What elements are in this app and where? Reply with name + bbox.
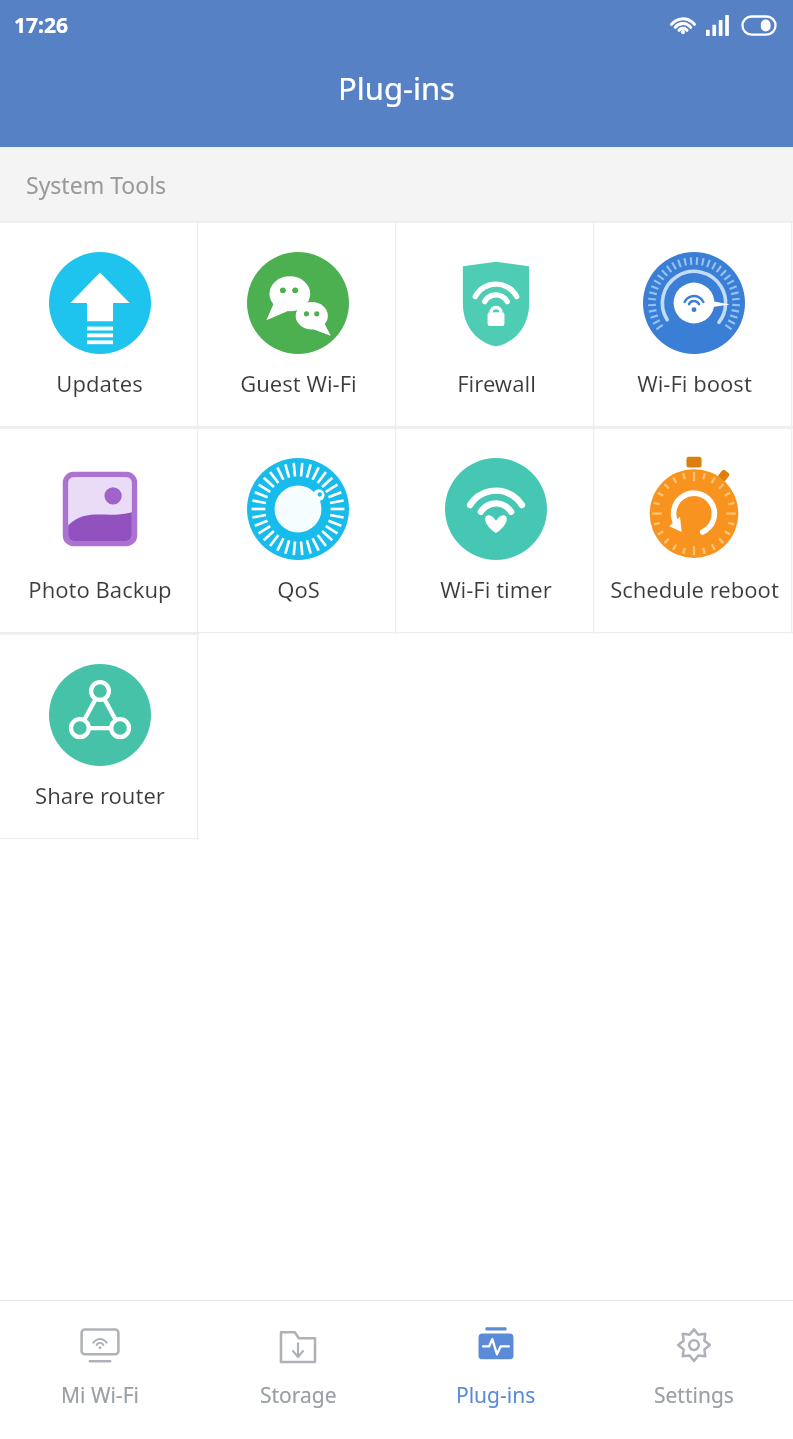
other: Mi Wi-Fi [77,1323,123,1369]
staticText: Updates [56,368,143,398]
button[interactable]: Guest Wi-Fi [199,222,397,428]
other: Plug-ins [473,1323,519,1369]
button[interactable]: Share router [0,634,199,840]
staticText: Plug-ins [338,67,455,109]
button[interactable]: Photo Backup [0,428,199,634]
staticText: Plug-ins [456,1381,536,1410]
staticText: Guest Wi-Fi [240,368,357,398]
staticText: Settings [654,1381,734,1410]
staticText: Mi Wi-Fi [61,1381,139,1410]
button[interactable]: Updates [0,222,199,428]
button[interactable]: Schedule reboot [595,428,793,634]
button[interactable]: Storage [199,1301,397,1439]
other: Settings [671,1323,717,1369]
staticText: QoS [277,574,320,604]
button[interactable]: Mi Wi-Fi [0,1301,199,1439]
button[interactable]: QoS [199,428,397,634]
staticText: System Tools [26,169,167,200]
other: Storage [275,1323,321,1369]
staticText: Share router [35,780,165,810]
staticText: Firewall [457,368,536,398]
staticText: Wi-Fi timer [440,574,552,604]
button[interactable]: Wi-Fi boost [595,222,793,428]
button[interactable]: Settings [595,1301,793,1439]
staticText: Schedule reboot [610,574,779,604]
staticText: Photo Backup [28,574,172,604]
button[interactable]: Wi-Fi timer [397,428,595,634]
button[interactable]: Firewall [397,222,595,428]
staticText: Wi-Fi boost [637,368,752,398]
staticText: Storage [260,1381,337,1410]
button[interactable]: Plug-ins [397,1301,595,1439]
staticText: 17:26 [14,11,68,40]
